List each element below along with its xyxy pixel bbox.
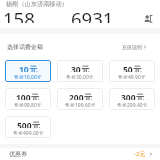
staticText: 200元 [69,92,93,100]
button[interactable]: 500元 [5,116,51,138]
staticText: 售价30.00元 [66,74,94,79]
staticText: 6931 [71,6,114,23]
staticText: 10元 [19,64,38,72]
button[interactable]: 30元 [57,60,103,82]
button[interactable]: 充值说明 [122,44,147,50]
staticText: 售价299.40元 [117,102,148,107]
button[interactable]: 50元 [109,60,155,82]
staticText: 300元 [121,92,145,100]
staticText: 售价499.00元 [13,130,44,135]
staticText: 售价99.80元 [14,102,42,107]
staticText: 充值说明 [122,44,142,50]
staticText: 选择话费金额 [7,43,43,51]
button[interactable]: 10元 [5,60,51,82]
staticText: 500元 [17,120,41,128]
staticText: 售价199.60元 [65,102,96,107]
button[interactable]: 100元 [5,88,51,110]
staticText: -2元 [134,150,146,158]
button[interactable]: 优惠券 [9,148,153,160]
staticText: 售价10.00元 [14,74,42,79]
button[interactable]: Choose contact [142,13,154,25]
staticText: 158 [3,6,35,23]
staticText: 100元 [16,92,40,100]
button[interactable]: 200元 [57,88,103,110]
staticText: 优惠券 [9,150,27,158]
staticText: 30元 [71,64,90,72]
staticText: 售价49.90元 [118,74,146,79]
staticText: 杨刚（山东济南移动） [6,0,68,8]
staticText: 50元 [123,64,142,72]
button[interactable]: 300元 [109,88,155,110]
